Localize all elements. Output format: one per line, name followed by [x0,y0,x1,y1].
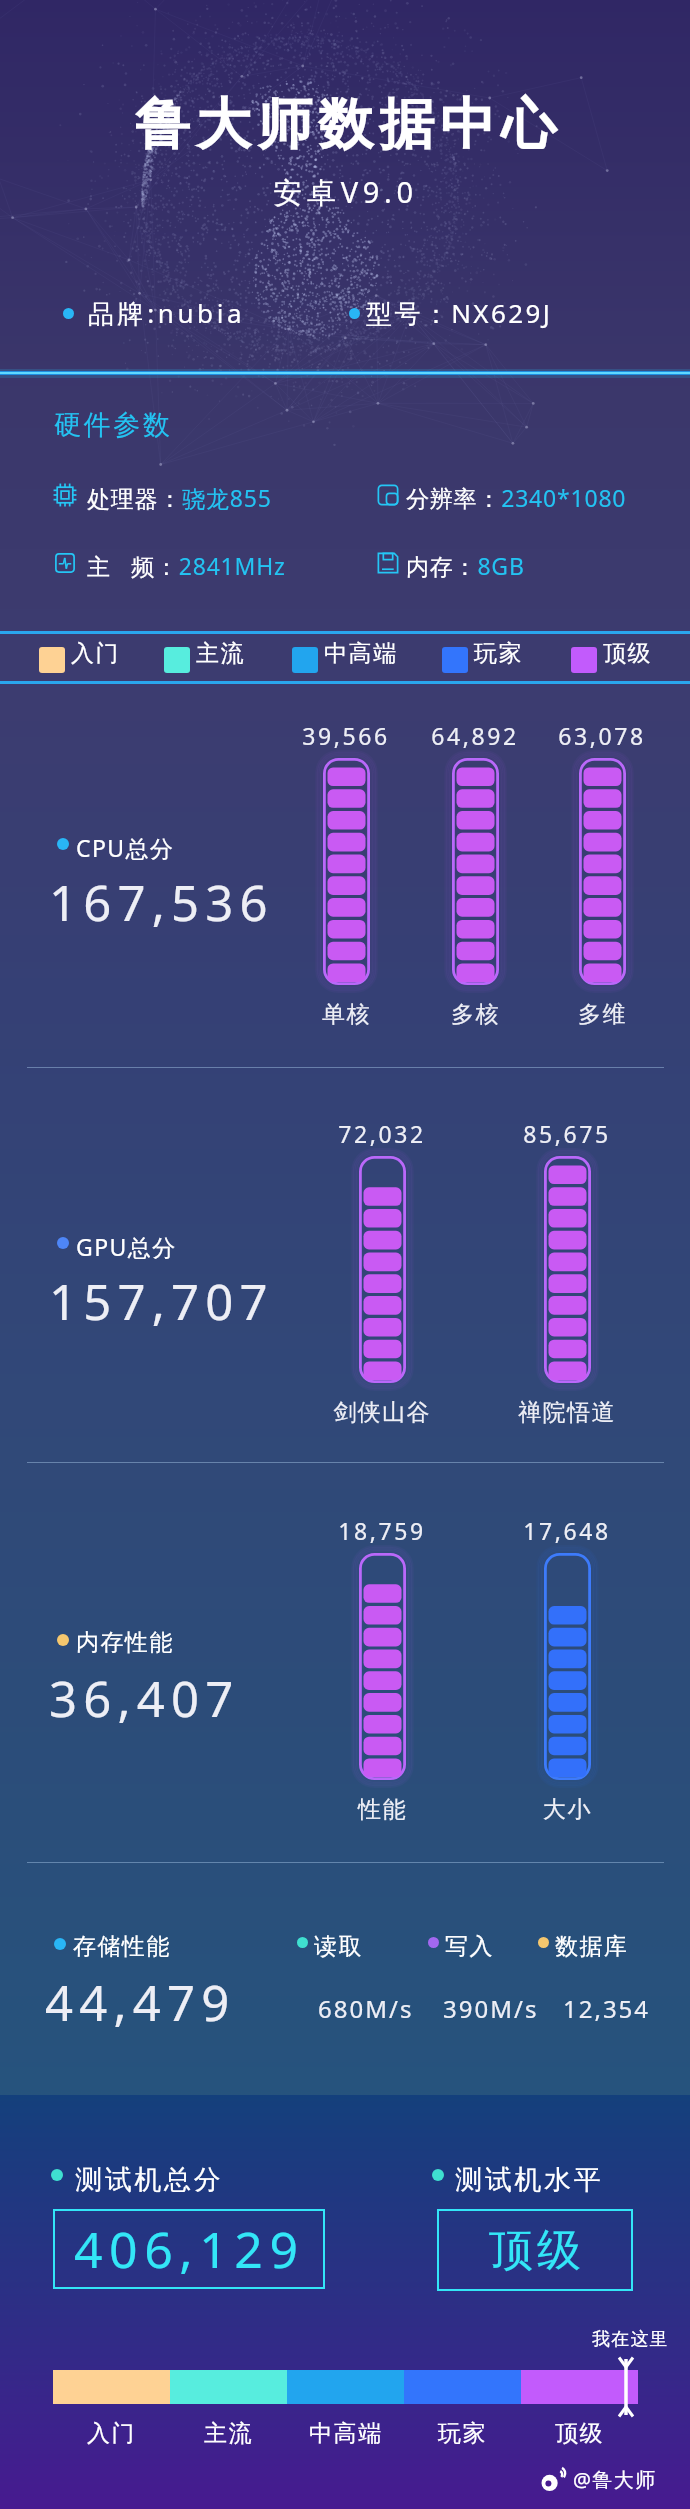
staticText: 中高端 [309,2419,383,2448]
button[interactable]: 主流 [164,639,246,668]
staticText: 18,759 [338,1515,426,1546]
staticText: CPU总分 [76,832,175,863]
staticText: 39,566 [302,720,390,751]
button[interactable]: 顶级 [571,639,653,668]
staticText: 我在这里 [592,2328,669,2351]
staticText: 内存性能 [76,1628,174,1657]
button[interactable]: 406,129 [53,2209,325,2289]
staticText: 剑侠山谷 [333,1398,431,1427]
staticText: 存储性能 [73,1932,171,1961]
staticText: 157,707 [49,1268,274,1335]
staticText: 390M/s [443,1992,539,2025]
staticText: 大小 [543,1795,592,1824]
staticText: 安卓V9.0 [273,172,418,212]
staticText: 测试机水平 [454,2163,602,2197]
staticText: 入门 [87,2419,137,2448]
staticText: 分辨率：2340*1080 [406,482,627,513]
staticText: 85,675 [523,1118,611,1149]
staticText: 品牌:nubia [88,295,246,331]
staticText: @鲁大师 [573,2466,657,2493]
staticText: 数据库 [555,1932,629,1961]
staticText: 中高端 [324,639,398,668]
staticText: 多核 [451,1000,500,1029]
button[interactable]: 中高端 [292,639,398,668]
staticText: 型号：NX629J [366,295,553,331]
staticText: 玩家 [474,639,524,668]
staticText: 测试机总分 [74,2163,222,2197]
staticText: 性能 [358,1795,407,1824]
staticText: 36,407 [49,1665,240,1732]
staticText: 680M/s [318,1992,414,2025]
staticText: 多维 [578,1000,627,1029]
staticText: 读取 [314,1932,363,1961]
staticText: 17,648 [523,1515,611,1546]
staticText: 12,354 [563,1992,651,2025]
staticText: 写入 [445,1932,494,1961]
button[interactable]: 顶级 [437,2209,633,2291]
staticText: 406,129 [74,2215,305,2283]
staticText: 44,479 [45,1969,236,2036]
staticText: 入门 [71,639,121,668]
staticText: 主 频：2841MHz [87,550,286,581]
staticText: 顶级 [487,2223,583,2278]
button[interactable]: 入门 [39,639,121,668]
staticText: 63,078 [558,720,646,751]
staticText: 64,892 [431,720,519,751]
staticText: 72,032 [338,1118,426,1149]
staticText: 顶级 [555,2419,605,2448]
staticText: 主流 [196,639,246,668]
staticText: 167,536 [49,869,274,936]
staticText: 鲁大师数据中心 [132,90,559,159]
staticText: 禅院悟道 [518,1398,616,1427]
button[interactable]: 玩家 [442,639,524,668]
staticText: 单核 [322,1000,371,1029]
staticText: 内存：8GB [406,550,525,581]
staticText: GPU总分 [76,1231,177,1262]
staticText: 顶级 [603,639,653,668]
staticText: 主流 [204,2419,254,2448]
staticText: 处理器：骁龙855 [87,482,272,513]
staticText: 硬件参数 [53,408,171,442]
staticText: 玩家 [438,2419,488,2448]
